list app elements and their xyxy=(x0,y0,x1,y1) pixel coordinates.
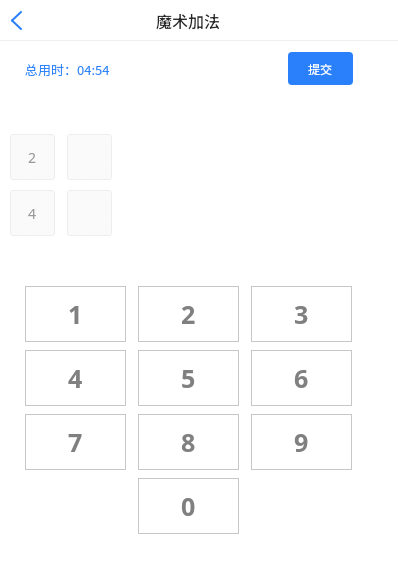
staticText: 6 xyxy=(294,361,309,395)
button[interactable] xyxy=(67,134,112,180)
button[interactable]: 4 xyxy=(25,350,126,406)
staticText: 4 xyxy=(68,361,83,395)
staticText: 8 xyxy=(181,425,196,459)
button[interactable]: 6 xyxy=(251,350,352,406)
button[interactable]: 提交 xyxy=(288,52,353,85)
staticText: 提交 xyxy=(308,60,333,77)
staticText: 5 xyxy=(181,361,196,395)
button[interactable]: 9 xyxy=(251,414,352,470)
button[interactable] xyxy=(67,190,112,236)
staticText: 总用时：04:54 xyxy=(25,60,110,79)
staticText: 2 xyxy=(181,297,196,331)
staticText: 9 xyxy=(294,425,309,459)
button[interactable]: Back xyxy=(0,0,36,40)
button[interactable]: 4 xyxy=(10,190,55,236)
staticText: 0 xyxy=(181,489,196,523)
staticText: 7 xyxy=(68,425,83,459)
staticText: 2 xyxy=(28,148,37,167)
button[interactable]: 2 xyxy=(10,134,55,180)
button[interactable]: 8 xyxy=(138,414,239,470)
button[interactable]: 1 xyxy=(25,286,126,342)
button[interactable]: 5 xyxy=(138,350,239,406)
staticText: 1 xyxy=(68,297,83,331)
staticText: 4 xyxy=(28,204,37,223)
staticText: 3 xyxy=(294,297,309,331)
button[interactable]: 3 xyxy=(251,286,352,342)
staticText: 魔术加法 xyxy=(156,9,221,32)
button[interactable]: 2 xyxy=(138,286,239,342)
button[interactable]: 0 xyxy=(138,478,239,534)
button[interactable]: 7 xyxy=(25,414,126,470)
